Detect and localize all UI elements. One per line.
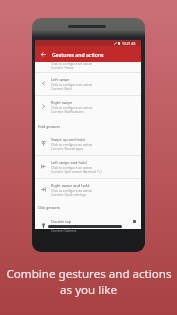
button[interactable]: Swipe up and hold (35, 132, 141, 155)
staticText: Right swipe and hold (51, 183, 90, 188)
staticText: Click to configure an action (51, 83, 93, 87)
staticText: Click gestures (38, 205, 60, 209)
staticText: Click to configure an action (51, 189, 93, 193)
staticText: Left swipe and hold (51, 160, 87, 165)
staticText: Combine gestures and actions (6, 266, 172, 282)
staticText: Hold gestures (38, 124, 60, 128)
staticText: Current: Notifications (51, 110, 84, 114)
button[interactable]: Double tap (35, 214, 141, 237)
button[interactable]: Left swipe (35, 72, 141, 95)
staticText: Click to configure an action (51, 62, 93, 66)
staticText: Double tap (51, 219, 72, 224)
staticText: as you like (60, 282, 117, 298)
staticText: Click to configure an action (51, 166, 93, 170)
staticText: Current: Split screen (Android 7+) (51, 170, 102, 174)
staticText: Current: Quick settings (51, 193, 87, 197)
staticText: Left swipe (51, 77, 70, 82)
staticText: Click to configure an action (51, 106, 93, 110)
staticText: Right swipe (51, 100, 73, 105)
staticText: 10:21:45 (122, 41, 136, 46)
staticText: Click to configure an action (51, 143, 93, 147)
button[interactable]: Right swipe (35, 95, 141, 118)
staticText: Swipe up and hold (51, 137, 85, 142)
button[interactable]: Left swipe and hold (35, 155, 141, 178)
staticText: Current: Home (51, 66, 74, 70)
button[interactable]: Right swipe and hold (35, 178, 141, 201)
staticText: Current: Camera (51, 229, 77, 233)
staticText: Click to configure an action (51, 225, 93, 229)
staticText: Current: Back (51, 87, 72, 91)
staticText: Gestures and actions (52, 51, 104, 58)
staticText: Current: Recent apps (51, 147, 84, 151)
button[interactable]: Navigate up (41, 52, 46, 57)
